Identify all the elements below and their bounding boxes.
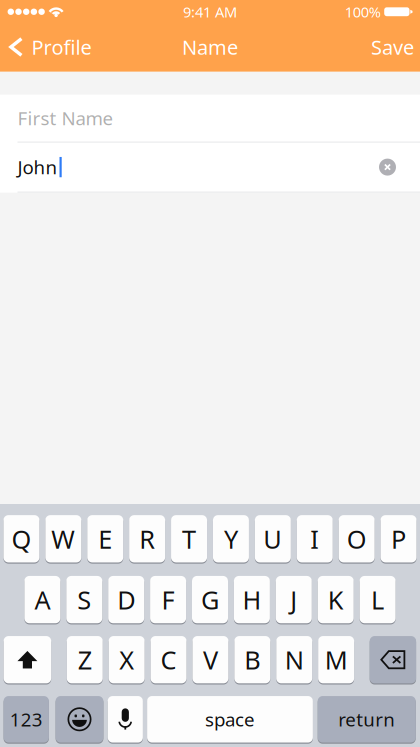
staticText: Profile [32,34,92,60]
button[interactable]: K [318,575,354,624]
button[interactable]: X [109,635,145,684]
button[interactable]: Dictate [108,695,143,743]
button[interactable]: space [147,695,313,743]
button[interactable]: N [276,635,312,684]
button[interactable]: A [24,575,60,624]
staticText: 100% [345,2,381,21]
button[interactable]: D [108,575,144,624]
staticText: E [98,522,112,556]
staticText: Name [182,34,238,60]
staticText: P [391,522,406,556]
staticText: A [34,583,50,616]
button[interactable]: I [297,514,333,563]
staticText: T [182,522,196,556]
staticText: G [201,583,219,616]
staticText: Z [78,643,92,676]
button[interactable]: E [87,514,123,563]
button[interactable]: L [360,575,396,624]
button[interactable]: M [318,635,354,684]
staticText: L [371,583,384,616]
staticText: Q [11,522,31,556]
button[interactable]: Z [67,635,103,684]
staticText: 9:41 AM [183,2,237,21]
staticText: F [162,583,175,616]
button[interactable]: Clear text [372,152,402,182]
staticText: Save [371,34,414,60]
button[interactable]: V [192,635,228,684]
staticText: C [161,643,177,676]
button[interactable]: Profile [0,25,102,69]
button[interactable]: return [318,695,416,743]
staticText: W [51,522,75,556]
staticText: John [17,155,57,179]
staticText: space [205,707,255,732]
button[interactable]: H [234,575,270,624]
button[interactable]: T [171,514,207,563]
staticText: Y [224,522,238,556]
button[interactable]: J [276,575,312,624]
button[interactable]: Emoji [56,695,103,743]
staticText: D [117,583,135,616]
staticText: S [77,583,91,616]
button[interactable]: B [234,635,270,684]
button[interactable]: R [129,514,165,563]
staticText: K [328,583,344,616]
button[interactable]: U [255,514,291,563]
staticText: H [242,583,261,616]
staticText: V [203,643,218,676]
button[interactable]: P [380,514,416,563]
button[interactable]: F [150,575,186,624]
staticText: X [119,643,134,676]
staticText: B [244,643,260,676]
staticText: return [338,707,395,732]
button[interactable]: O [339,514,375,563]
staticText: 123 [10,707,43,732]
staticText: M [325,643,348,676]
button[interactable]: W [45,514,81,563]
button[interactable]: Save [357,25,420,69]
button[interactable]: C [151,635,187,684]
button[interactable]: Y [213,514,249,563]
button[interactable]: S [66,575,102,624]
button[interactable]: Shift [4,635,51,684]
staticText: N [285,643,304,676]
button[interactable]: Q [3,514,39,563]
button[interactable]: 123 [4,695,49,743]
staticText: First Name [17,106,113,130]
staticText: J [290,583,297,616]
staticText: I [310,522,319,556]
staticText: U [263,522,282,556]
staticText: O [347,522,367,556]
staticText: R [139,522,155,556]
button[interactable]: G [192,575,228,624]
button[interactable]: Delete [370,635,416,684]
